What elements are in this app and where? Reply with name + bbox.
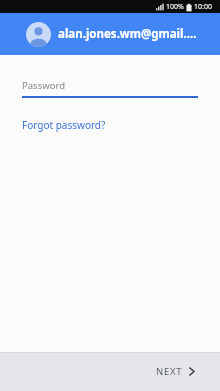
staticText: 100% [166,2,184,12]
button[interactable]: alan.jones.wm@gmail.... [0,13,220,55]
button[interactable]: Password [22,79,198,98]
staticText: 10:00 [194,2,212,12]
staticText: Password [22,79,65,92]
staticText: NEXT [156,365,183,378]
button[interactable]: NEXT [156,365,195,378]
staticText: alan.jones.wm@gmail.... [58,26,197,42]
button[interactable]: Forgot password? [22,118,106,132]
